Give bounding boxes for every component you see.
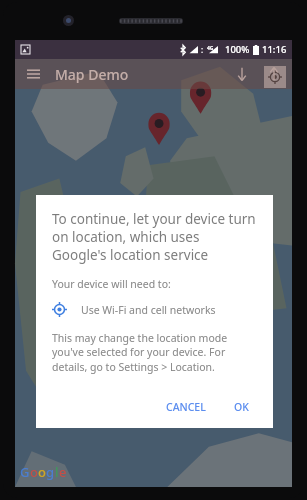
button[interactable]: Open navigation drawer <box>20 61 46 87</box>
staticText: l <box>55 463 59 481</box>
button[interactable]: Move up <box>262 62 286 86</box>
staticText: 11:16 <box>262 43 287 56</box>
staticText: Map Demo <box>55 65 129 84</box>
staticText: Your device will need to: <box>52 277 171 291</box>
staticText: To continue, let your device turn on loc… <box>52 210 257 264</box>
staticText: G <box>20 463 30 481</box>
staticText: 100% <box>225 43 250 56</box>
button[interactable]: CANCEL <box>158 394 214 420</box>
button[interactable]: OK <box>226 394 257 420</box>
staticText: g <box>46 463 55 481</box>
staticText: CANCEL <box>166 400 206 414</box>
staticText: o <box>38 463 46 481</box>
button[interactable]: My location <box>264 66 286 88</box>
staticText: OK <box>234 400 249 414</box>
staticText: Use Wi-Fi and cell networks <box>81 303 216 317</box>
staticText: o <box>30 463 38 481</box>
staticText: e <box>59 463 67 481</box>
button[interactable]: Move down <box>230 62 254 86</box>
staticText: : <box>201 44 204 55</box>
staticText: This may change the location mode you've… <box>52 331 257 374</box>
staticText: 4G <box>207 45 214 52</box>
